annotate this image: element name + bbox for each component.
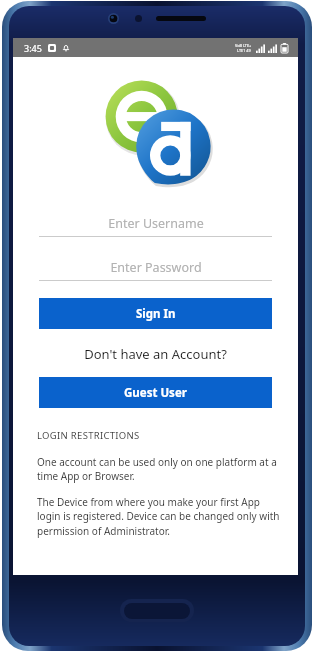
button[interactable]: Sign In [39,298,272,329]
button[interactable]: Enter Password [39,257,272,281]
staticText: LOGIN RESTRICTIONS [37,429,140,442]
staticText: Guest User [124,385,187,401]
button[interactable]: Guest User [39,377,272,408]
staticText: Don't have an Account? [39,345,272,363]
staticText: 3:45 [24,42,42,54]
staticText: One account can be used only on one plat… [37,455,284,483]
staticText: Enter Username [108,215,204,232]
staticText: The Device from where you make your firs… [37,495,284,538]
other: App logo [99,77,219,197]
staticText: Enter Password [110,259,202,276]
staticText: VoB LTE+ [235,43,252,48]
button[interactable]: Enter Username [39,213,272,237]
staticText: Sign In [136,306,176,322]
staticText: LTE1 49 [237,48,251,53]
